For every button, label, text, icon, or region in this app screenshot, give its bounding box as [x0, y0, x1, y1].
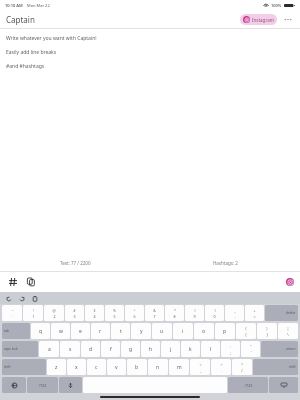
- button[interactable]: m: [169, 359, 189, 375]
- button[interactable]: caps lock: [2, 341, 38, 357]
- button[interactable]: i: [173, 323, 193, 339]
- button[interactable]: delete: [265, 305, 298, 321]
- button[interactable]: More options: [282, 13, 294, 25]
- staticText: ]: [266, 332, 268, 337]
- button[interactable]: tab: [2, 323, 30, 339]
- button[interactable]: Dictation: [59, 377, 82, 393]
- button[interactable]: b: [127, 359, 147, 375]
- button[interactable]: shift: [253, 359, 298, 375]
- staticText: \: [287, 332, 289, 337]
- button[interactable]: ?: [232, 359, 252, 375]
- staticText: z: [55, 364, 58, 371]
- staticText: 7: [153, 314, 156, 319]
- staticText: :: [230, 344, 231, 349]
- button[interactable]: w: [51, 323, 70, 339]
- staticText: ": [250, 344, 252, 349]
- staticText: q: [39, 328, 43, 335]
- button[interactable]: s: [60, 341, 80, 357]
- button[interactable]: e: [71, 323, 90, 339]
- button[interactable]: Hide keyboard: [269, 377, 298, 393]
- button[interactable]: o: [194, 323, 214, 339]
- button[interactable]: |: [278, 323, 298, 339]
- button[interactable]: h: [141, 341, 160, 357]
- button[interactable]: return: [261, 341, 298, 357]
- button[interactable]: #: [65, 305, 84, 321]
- staticText: c: [95, 364, 98, 371]
- button[interactable]: !: [23, 305, 43, 321]
- staticText: 0: [213, 314, 216, 319]
- button[interactable]: q: [31, 323, 50, 339]
- staticText: {: [245, 326, 247, 331]
- button[interactable]: r: [91, 323, 110, 339]
- button[interactable]: j: [161, 341, 180, 357]
- button[interactable]: Paste: [30, 294, 39, 303]
- button[interactable]: n: [148, 359, 168, 375]
- staticText: s: [69, 346, 72, 353]
- button[interactable]: g: [121, 341, 140, 357]
- button[interactable]: :: [221, 341, 240, 357]
- button[interactable]: l: [201, 341, 220, 357]
- button[interactable]: u: [152, 323, 172, 339]
- button[interactable]: >: [211, 359, 231, 375]
- staticText: n: [156, 364, 160, 371]
- button[interactable]: d: [81, 341, 100, 357]
- button[interactable]: shift: [2, 359, 46, 375]
- staticText: d: [89, 346, 93, 353]
- button[interactable]: .?123: [27, 377, 58, 393]
- staticText: .?123: [38, 383, 47, 388]
- button[interactable]: x: [67, 359, 86, 375]
- button[interactable]: y: [131, 323, 151, 339]
- button[interactable]: ^: [125, 305, 144, 321]
- button[interactable]: f: [101, 341, 120, 357]
- button[interactable]: z: [47, 359, 66, 375]
- button[interactable]: %: [105, 305, 124, 321]
- button[interactable]: ): [205, 305, 224, 321]
- button[interactable]: _: [225, 305, 244, 321]
- staticText: *: [174, 308, 176, 313]
- button[interactable]: t: [111, 323, 130, 339]
- staticText: i: [182, 328, 184, 335]
- staticText: %: [113, 308, 116, 313]
- button[interactable]: Instagram: [240, 14, 277, 25]
- staticText: l: [210, 346, 212, 353]
- button[interactable]: Emoji: [2, 377, 26, 393]
- button[interactable]: $: [85, 305, 104, 321]
- button[interactable]: Undo: [4, 294, 13, 303]
- button[interactable]: &: [145, 305, 164, 321]
- button[interactable]: Post to Instagram: [286, 278, 294, 286]
- button[interactable]: +: [245, 305, 264, 321]
- button[interactable]: ~: [2, 305, 22, 321]
- staticText: f: [110, 346, 112, 353]
- button[interactable]: Redo: [17, 294, 26, 303]
- staticText: shift: [289, 365, 296, 369]
- button[interactable]: v: [107, 359, 126, 375]
- staticText: ': [251, 350, 252, 355]
- staticText: .: [221, 368, 222, 373]
- button[interactable]: Copy: [24, 275, 38, 289]
- staticText: =: [253, 314, 256, 319]
- staticText: 10:10 AM: [5, 3, 23, 8]
- staticText: ;: [230, 350, 231, 355]
- button[interactable]: .?123: [228, 377, 268, 393]
- button[interactable]: {: [236, 323, 256, 339]
- button[interactable]: }: [257, 323, 277, 339]
- button[interactable]: c: [87, 359, 106, 375]
- button[interactable]: ": [241, 341, 260, 357]
- staticText: +: [253, 308, 256, 313]
- button[interactable]: k: [181, 341, 200, 357]
- button[interactable]: @: [44, 305, 64, 321]
- staticText: y: [140, 328, 143, 335]
- staticText: x: [75, 364, 78, 371]
- button[interactable]: *: [165, 305, 184, 321]
- staticText: -: [234, 314, 236, 319]
- staticText: &: [153, 308, 156, 313]
- button[interactable]: p: [215, 323, 235, 339]
- staticText: ^: [133, 308, 136, 313]
- button[interactable]: a: [39, 341, 59, 357]
- button[interactable]: (: [185, 305, 204, 321]
- staticText: u: [160, 328, 164, 335]
- staticText: (: [194, 308, 196, 313]
- button[interactable]: Hashtags: [6, 275, 20, 289]
- button[interactable]: <: [190, 359, 210, 375]
